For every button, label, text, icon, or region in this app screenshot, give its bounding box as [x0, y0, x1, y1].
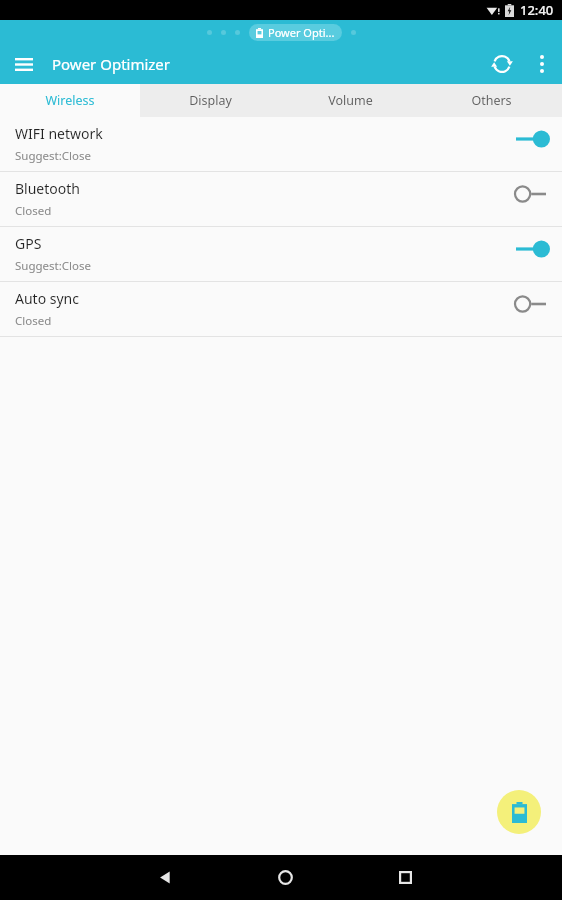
- button[interactable]: Auto sync off: [510, 292, 554, 316]
- button[interactable]: WIFI network on: [510, 127, 554, 151]
- staticText: Suggest:Close: [15, 148, 91, 164]
- button[interactable]: Refresh: [482, 44, 522, 84]
- button[interactable]: Home: [261, 855, 309, 900]
- staticText: Others: [471, 92, 512, 109]
- button[interactable]: Auto sync: [0, 282, 562, 336]
- button[interactable]: Open navigation drawer: [11, 51, 37, 77]
- button[interactable]: WIFI network: [0, 117, 562, 171]
- staticText: Closed: [15, 313, 52, 329]
- button[interactable]: Wireless: [0, 84, 140, 117]
- staticText: Power Optimizer: [52, 54, 171, 74]
- button[interactable]: Display: [140, 84, 280, 117]
- staticText: Auto sync: [15, 289, 79, 308]
- staticText: Bluetooth: [15, 179, 80, 198]
- button[interactable]: Power Opti...: [256, 24, 335, 41]
- staticText: Suggest:Close: [15, 258, 91, 274]
- button[interactable]: Bluetooth off: [510, 182, 554, 206]
- button[interactable]: Recent apps: [381, 855, 429, 900]
- staticText: GPS: [15, 234, 42, 253]
- staticText: Closed: [15, 203, 52, 219]
- staticText: Volume: [328, 92, 373, 109]
- button[interactable]: Optimize battery: [497, 790, 541, 834]
- staticText: Power Opti...: [268, 25, 335, 40]
- button[interactable]: Back: [141, 855, 189, 900]
- staticText: 12:40: [520, 1, 554, 19]
- button[interactable]: Volume: [280, 84, 421, 117]
- button[interactable]: GPS on: [510, 237, 554, 261]
- staticText: Wireless: [45, 92, 95, 109]
- button[interactable]: More options: [522, 44, 562, 84]
- button[interactable]: Others: [421, 84, 562, 117]
- button[interactable]: Bluetooth: [0, 172, 562, 226]
- button[interactable]: GPS: [0, 227, 562, 281]
- staticText: WIFI network: [15, 124, 103, 143]
- staticText: Display: [189, 92, 232, 109]
